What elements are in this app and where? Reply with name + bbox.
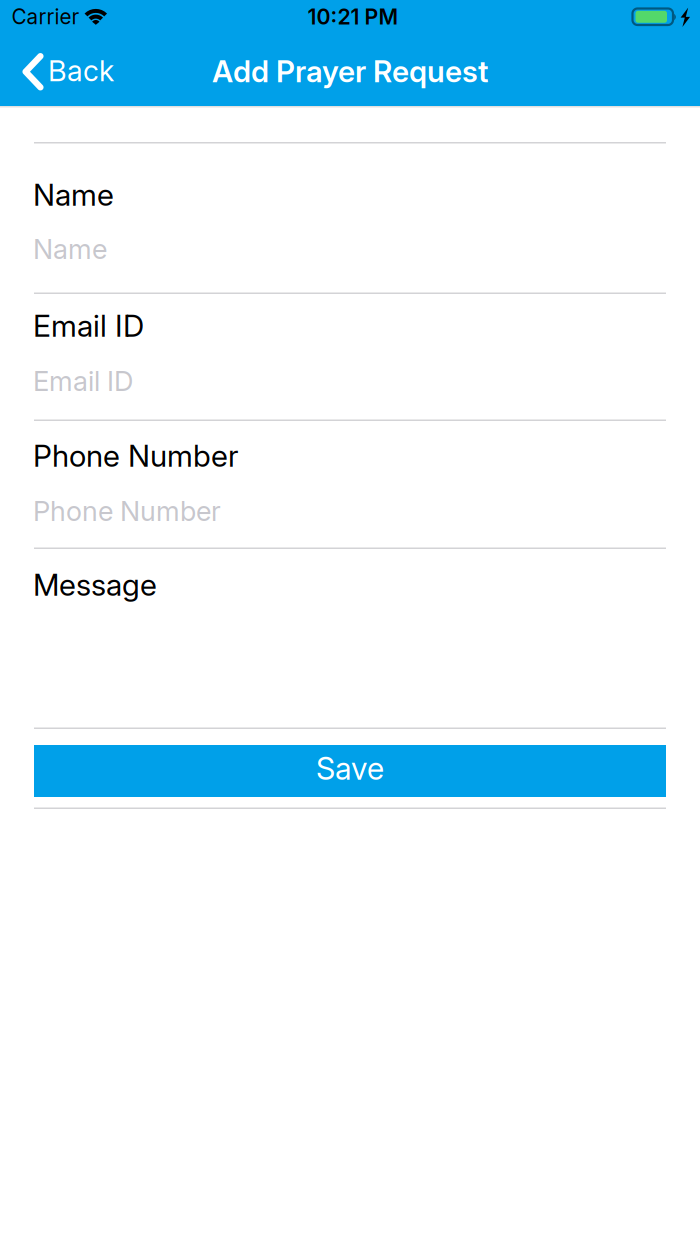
staticText: Phone Number bbox=[33, 438, 239, 474]
staticText: Add Prayer Request bbox=[212, 53, 488, 89]
staticText: Email ID bbox=[33, 365, 133, 398]
staticText: Message bbox=[33, 567, 157, 603]
staticText: Name bbox=[33, 177, 114, 213]
staticText: Name bbox=[33, 232, 107, 265]
staticText: Back bbox=[48, 53, 114, 88]
staticText: Carrier bbox=[11, 4, 79, 29]
staticText: Phone Number bbox=[33, 495, 221, 528]
staticText: Email ID bbox=[33, 308, 144, 344]
staticText: Save bbox=[316, 750, 384, 787]
staticText: 10:21 PM bbox=[307, 4, 398, 30]
